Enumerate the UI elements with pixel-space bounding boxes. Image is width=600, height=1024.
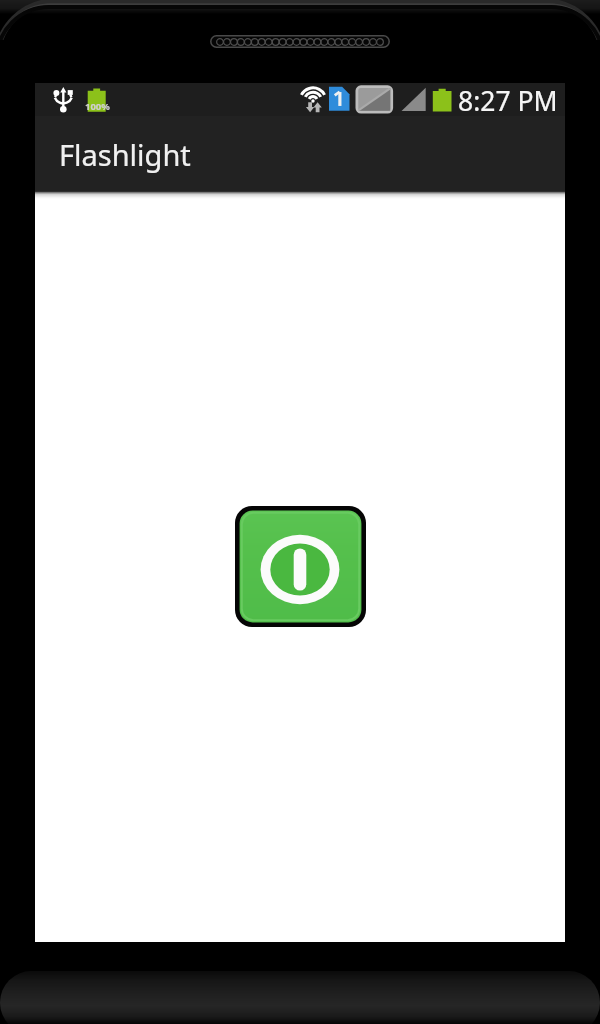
staticText: 100% [85,100,110,113]
staticText: Flashlight [59,135,191,174]
staticText: 8:27 PM [458,83,558,116]
button[interactable]: Toggle flashlight [235,506,366,627]
